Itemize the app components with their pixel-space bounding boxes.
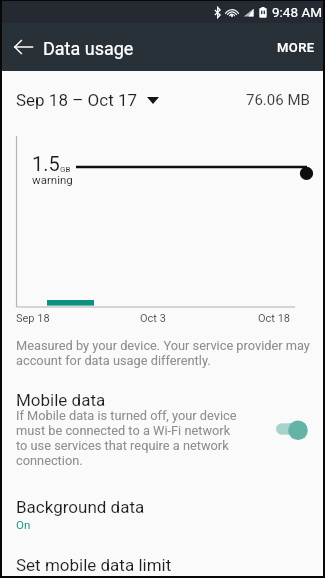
staticText: If Mobile data is turned off, your devic… xyxy=(16,408,237,468)
button[interactable]: Sep 18 – Oct 17 xyxy=(2,85,165,115)
staticText: Sep 18 xyxy=(16,312,50,325)
staticText: Oct 3 xyxy=(140,312,166,325)
staticText: MORE xyxy=(277,40,315,55)
staticText: Mobile data xyxy=(16,390,106,410)
staticText: Sep 18 – Oct 17 xyxy=(16,90,138,110)
staticText: warning xyxy=(32,173,73,186)
button[interactable]: MORE xyxy=(269,26,323,69)
button[interactable]: Background data xyxy=(2,489,323,537)
staticText: Data usage xyxy=(43,38,134,59)
button[interactable]: Mobile data on xyxy=(276,416,320,442)
staticText: Set mobile data limit xyxy=(16,555,172,575)
staticText: Background data xyxy=(16,497,145,517)
staticText: Oct 18 xyxy=(258,312,291,325)
staticText: GB xyxy=(60,165,71,174)
button[interactable]: Mobile data xyxy=(2,383,323,473)
staticText: 76.06 MB xyxy=(246,91,310,109)
staticText: 9:48 AM xyxy=(272,4,322,20)
staticText: 1.5 xyxy=(32,152,60,175)
button[interactable]: Back xyxy=(2,23,44,71)
button[interactable]: Set mobile data limit xyxy=(2,543,323,576)
staticText: On xyxy=(16,518,31,531)
staticText: Measured by your device. Your service pr… xyxy=(16,338,310,368)
